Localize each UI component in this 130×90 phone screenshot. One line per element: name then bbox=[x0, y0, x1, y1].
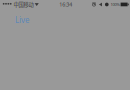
button[interactable]: Live bbox=[0, 8, 36, 29]
staticText: 100% bbox=[111, 2, 120, 7]
staticText: 中国移动 bbox=[14, 1, 34, 8]
staticText: Live bbox=[15, 15, 30, 25]
staticText: 16:34 bbox=[59, 1, 72, 8]
